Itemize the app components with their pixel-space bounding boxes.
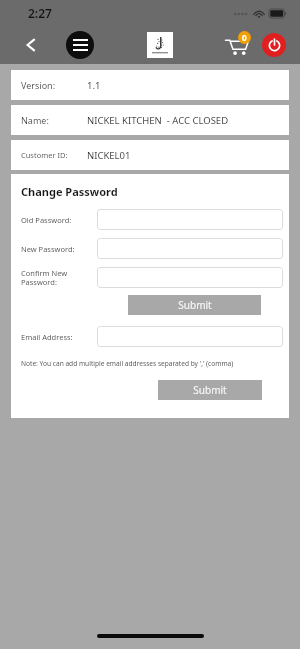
- staticText: Submit: [178, 298, 212, 312]
- staticText: Old Password:: [21, 215, 72, 225]
- staticText: Customer ID:: [21, 150, 68, 160]
- button[interactable]: [97, 326, 283, 347]
- staticText: 2:27: [28, 5, 52, 21]
- staticText: NICKEL01: [87, 149, 131, 162]
- button[interactable]: Submit: [128, 295, 261, 315]
- staticText: Email Address:: [21, 332, 73, 342]
- staticText: Change Password: [21, 184, 118, 199]
- staticText: Submit: [193, 383, 227, 397]
- staticText: Version:: [21, 79, 56, 91]
- staticText: Confirm New Password:: [21, 268, 68, 287]
- staticText: Note: You can add multiple email address…: [21, 359, 234, 368]
- button[interactable]: Submit: [158, 380, 262, 400]
- button[interactable]: Logo: [147, 32, 173, 58]
- staticText: Name:: [21, 114, 49, 126]
- button[interactable]: Menu: [66, 31, 94, 59]
- staticText: 0: [242, 32, 247, 43]
- button[interactable]: Name:: [11, 105, 289, 135]
- button[interactable]: Version:: [11, 70, 289, 100]
- button[interactable]: [97, 238, 283, 259]
- staticText: NICKEL KITCHEN - ACC CLOSED: [87, 114, 229, 127]
- staticText: 1.1: [87, 79, 101, 92]
- button[interactable]: Back: [20, 34, 42, 56]
- button[interactable]: Cart: [222, 30, 252, 60]
- staticText: New Password:: [21, 244, 75, 254]
- button[interactable]: [97, 267, 283, 288]
- button[interactable]: Logout: [262, 33, 286, 57]
- button[interactable]: [97, 209, 283, 230]
- button[interactable]: Customer ID:: [11, 140, 289, 170]
